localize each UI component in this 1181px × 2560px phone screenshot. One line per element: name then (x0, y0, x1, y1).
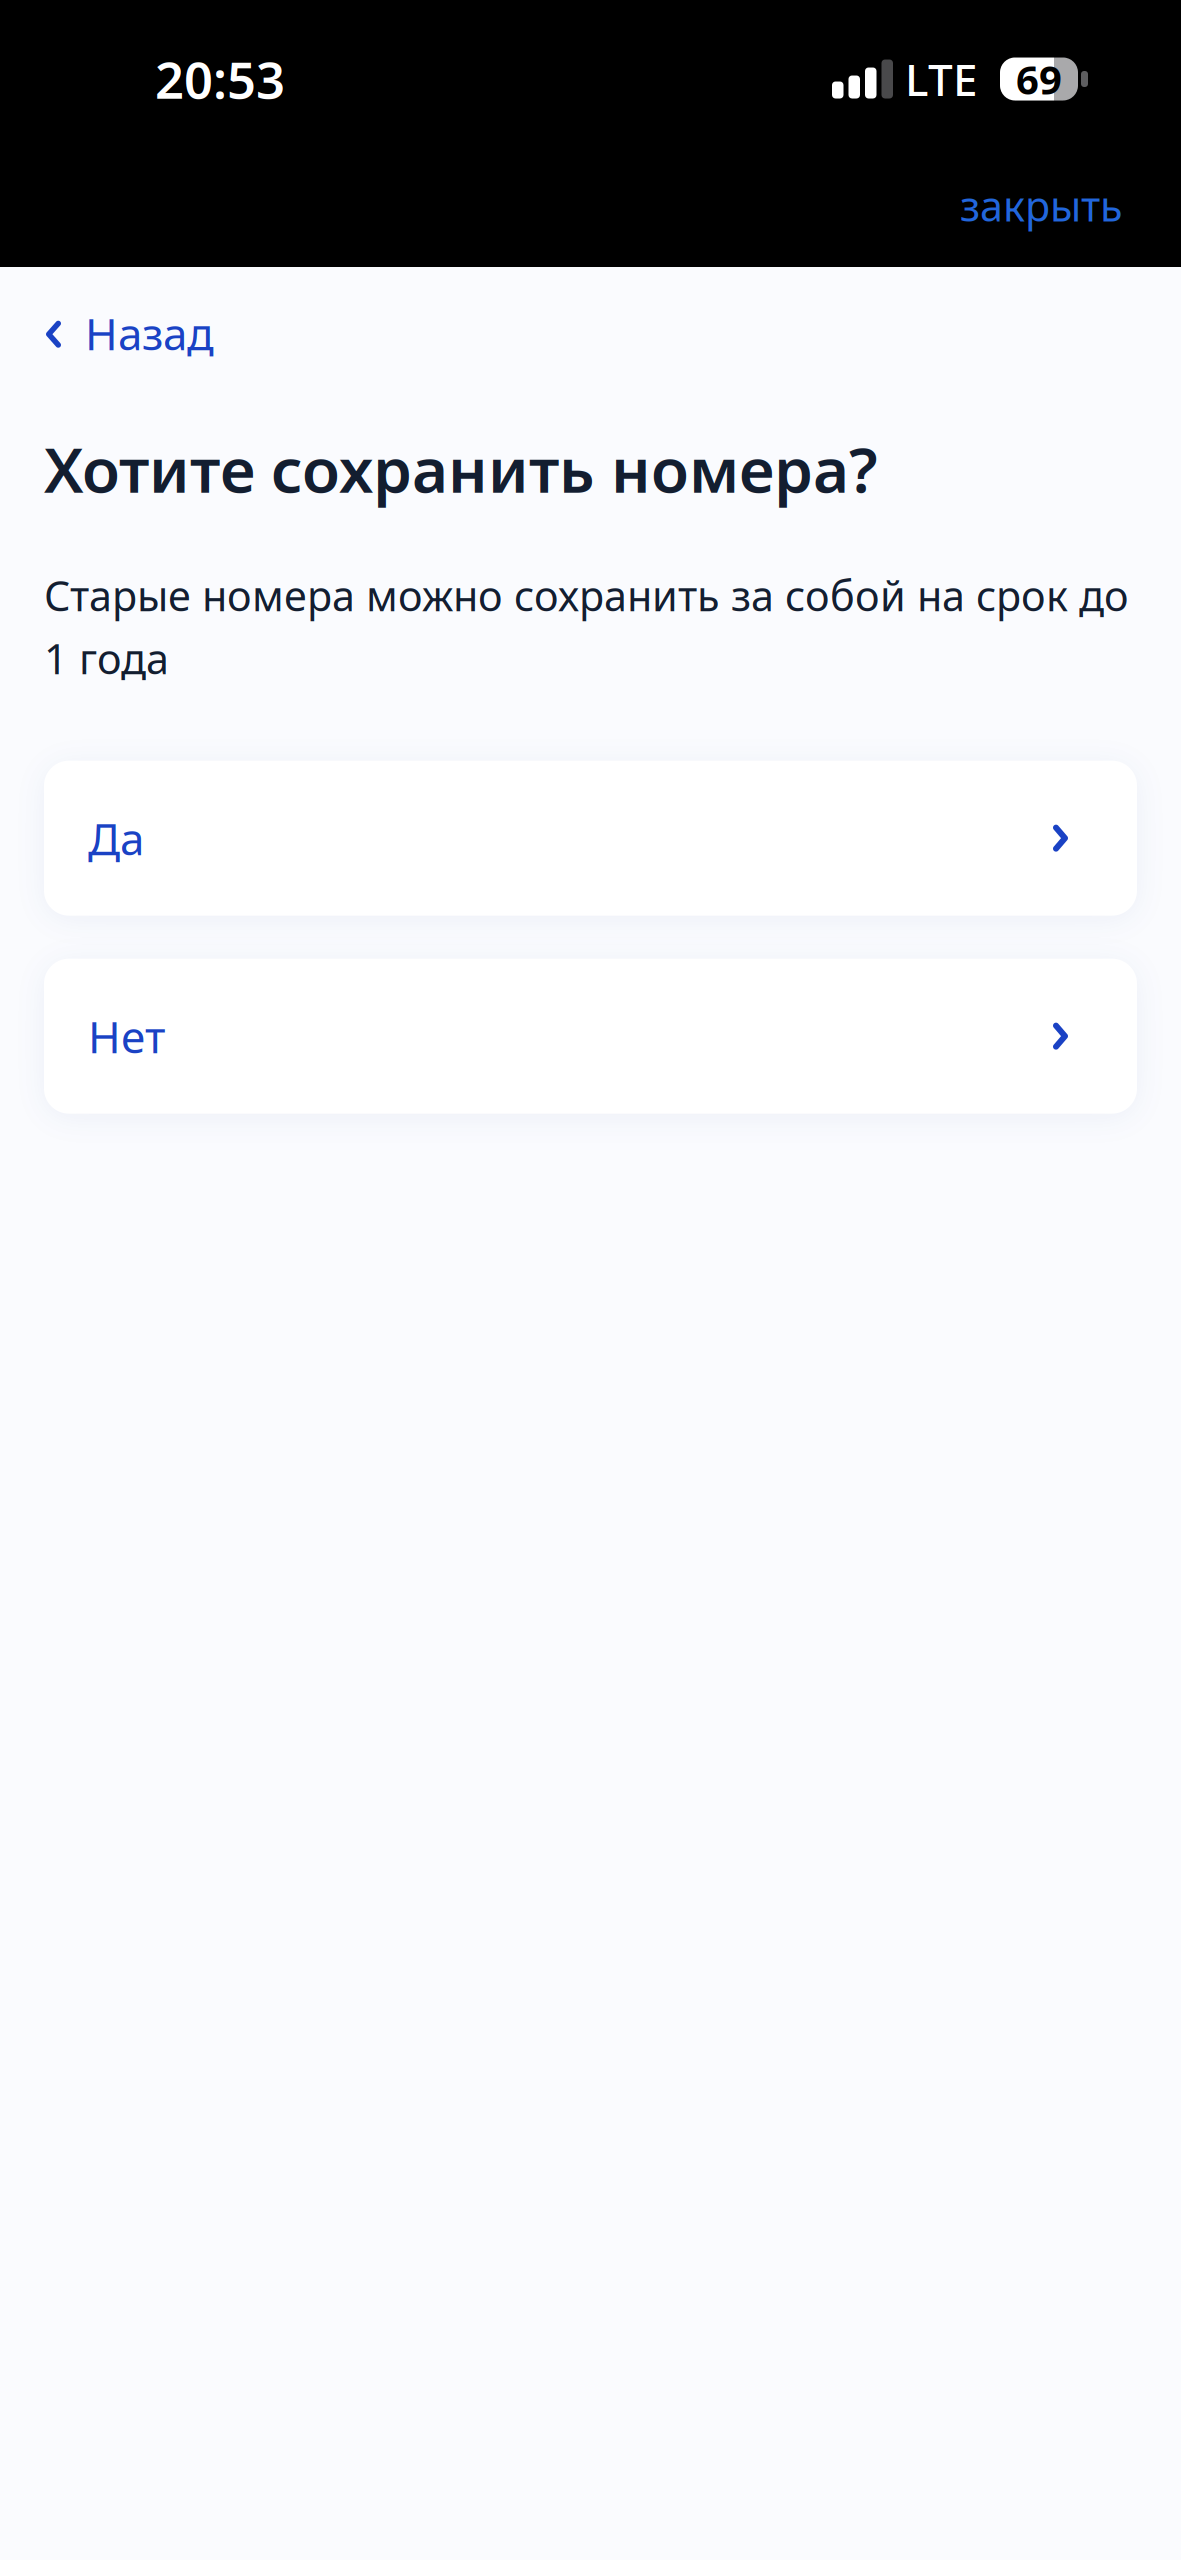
staticText: Да (88, 809, 144, 867)
staticText: 69 (1016, 52, 1062, 105)
staticText: 20:53 (155, 45, 285, 113)
button[interactable]: закрыть (960, 164, 1181, 247)
staticText: Назад (85, 304, 214, 362)
button[interactable]: Назад (0, 267, 214, 376)
staticText: закрыть (960, 178, 1123, 233)
button[interactable]: Нет (44, 959, 1137, 1114)
button[interactable]: Да (44, 761, 1137, 916)
staticText: Хотите сохранить номера? (44, 426, 878, 511)
staticText: LTE (905, 50, 978, 108)
staticText: Нет (88, 1007, 165, 1065)
staticText: Старые номера можно сохранить за собой н… (44, 568, 1129, 686)
